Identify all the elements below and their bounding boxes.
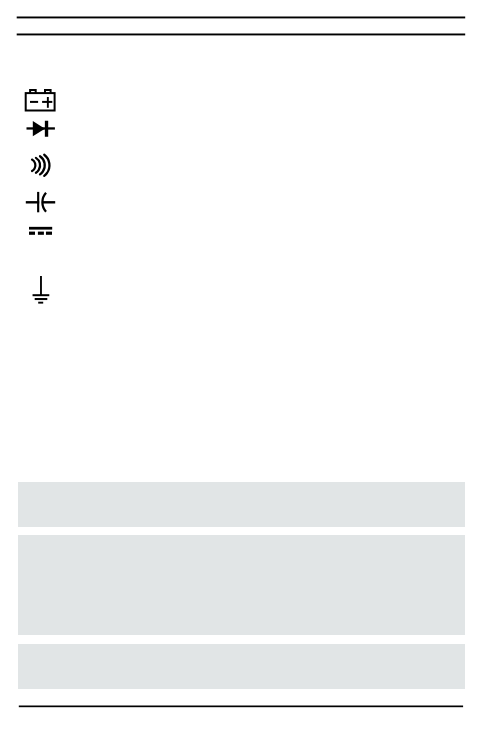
button[interactable]: Diode <box>20 117 64 141</box>
button[interactable]: Battery <box>20 84 64 116</box>
button[interactable]: Ground <box>20 272 64 308</box>
button[interactable]: Radio signal <box>20 150 64 182</box>
button[interactable]: Direct current <box>20 222 64 240</box>
button[interactable]: Capacitor <box>20 190 80 216</box>
